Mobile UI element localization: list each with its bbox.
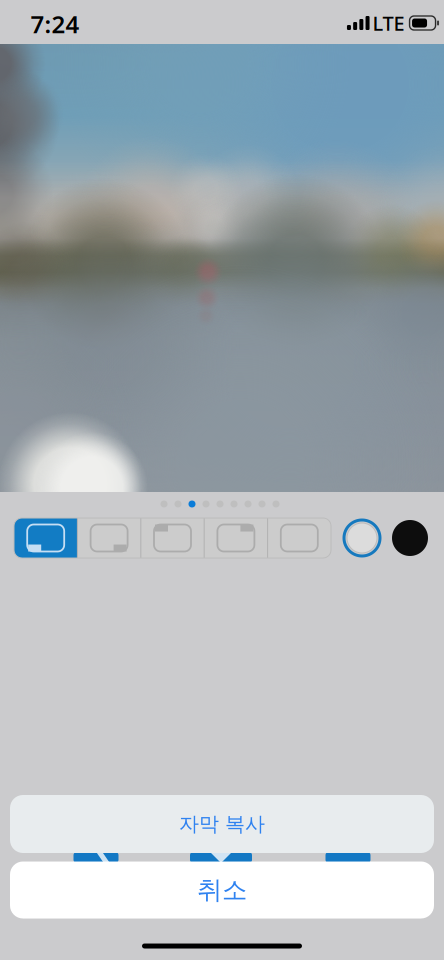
button[interactable]: White subtitle colour [341,517,383,559]
button[interactable]: No caption [268,518,331,558]
button[interactable]: Share [73,852,118,863]
button[interactable]: Caption bottom left [14,518,77,558]
staticText: LTE [373,10,405,36]
button[interactable]: Save to Files [190,852,252,863]
staticText: 7:24 [30,8,79,40]
button[interactable]: Caption top left [141,518,204,558]
staticText: 자막 복사 [179,812,265,836]
button[interactable]: Black subtitle colour [389,517,431,559]
staticText: 취소 [197,874,247,905]
button[interactable]: Caption bottom right [77,518,141,558]
button[interactable]: Caption top right [204,518,268,558]
button[interactable]: 자막 복사 [10,795,434,853]
button[interactable]: 취소 [10,861,434,918]
button[interactable]: Copy [325,852,370,863]
